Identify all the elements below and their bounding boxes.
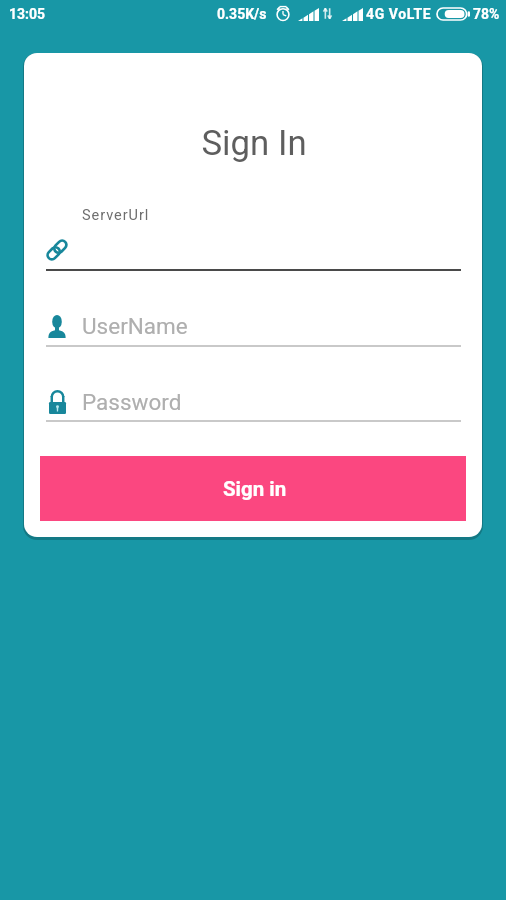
other: Lock (49, 390, 66, 414)
staticText: 78% (473, 6, 500, 22)
staticText: 0.35K/s (217, 6, 267, 22)
staticText: Sign in (223, 477, 287, 501)
staticText: Password (82, 389, 182, 415)
staticText: 4G VoLTE (366, 6, 432, 22)
button[interactable]: Password (46, 380, 461, 427)
button[interactable]: Server URL (46, 228, 461, 276)
staticText: Sign In (25, 123, 482, 164)
staticText: 13:05 (9, 6, 46, 22)
staticText: UserName (82, 313, 188, 339)
button[interactable]: User name (46, 304, 461, 352)
staticText: ServerUrl (82, 207, 150, 224)
other: Link (45, 238, 69, 262)
button[interactable]: Sign in (40, 456, 466, 521)
other: Account (48, 315, 66, 338)
